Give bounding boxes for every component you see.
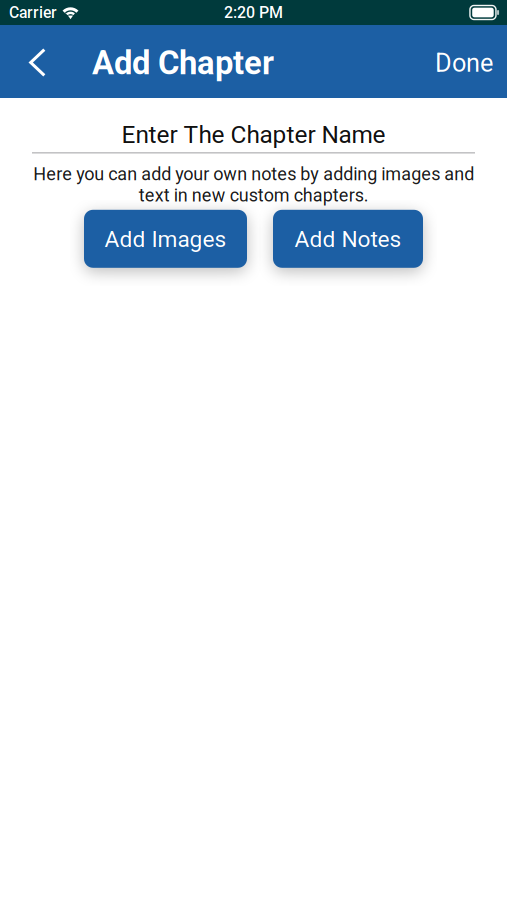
staticText: Done [435, 48, 493, 78]
staticText: Enter The Chapter Name [121, 120, 385, 149]
staticText: Add Notes [294, 226, 401, 253]
button[interactable]: Add Notes [273, 210, 423, 268]
staticText: Add Chapter [92, 44, 274, 82]
staticText: Add Images [104, 226, 226, 253]
button[interactable]: Enter The Chapter Name [0, 98, 507, 154]
button[interactable]: Add Images [84, 210, 247, 268]
staticText: Carrier [9, 3, 57, 22]
button[interactable]: Back [0, 25, 92, 98]
staticText: 2:20 PM [224, 3, 283, 22]
button[interactable]: Done [419, 25, 507, 98]
staticText: Here you can add your own notes by addin… [33, 164, 474, 206]
